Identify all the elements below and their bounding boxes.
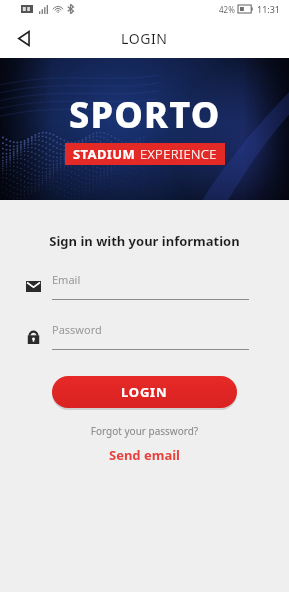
staticText: Password <box>52 322 102 337</box>
staticText: Sign in with your information <box>0 232 289 250</box>
staticText: EXPERIENCE <box>140 145 217 163</box>
staticText: 42% <box>219 4 235 15</box>
staticText: STADIUM <box>73 145 136 163</box>
staticText: 11:31 <box>257 3 281 15</box>
button[interactable]: Password <box>22 322 249 350</box>
button[interactable]: LOGIN <box>52 376 237 408</box>
staticText: LOGIN <box>121 383 168 401</box>
staticText: Email <box>52 272 81 287</box>
staticText: Send email <box>109 446 180 464</box>
staticText: LOGIN <box>121 29 168 48</box>
button[interactable]: Email <box>22 272 249 300</box>
button[interactable]: Back <box>8 22 40 54</box>
button[interactable]: Send email <box>97 444 192 466</box>
staticText: SPORTO <box>69 90 221 139</box>
staticText: Forgot your password? <box>0 424 289 438</box>
